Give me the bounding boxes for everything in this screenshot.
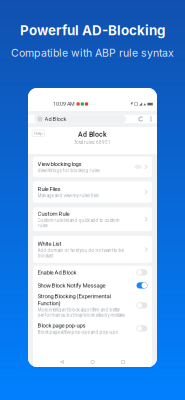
staticText: Strong Blocking (Experimental Function) xyxy=(37,293,110,307)
staticText: White List xyxy=(37,240,61,247)
staticText: Ad Block xyxy=(78,130,107,138)
staticText: Block page active pop-ups and pop-ups xyxy=(37,329,117,335)
staticText: Ad Block xyxy=(44,116,66,122)
staticText: Total rules: 68951 xyxy=(74,140,111,145)
staticText: More intelligent block algorithm and bet… xyxy=(37,307,124,318)
staticText: Rule Files xyxy=(37,186,60,192)
button[interactable]: Reload xyxy=(138,115,144,123)
button[interactable]: View blocking logs xyxy=(33,157,152,177)
button[interactable]: White List xyxy=(33,236,152,263)
staticText: Show Block Notify Message xyxy=(37,282,105,289)
staticText: Enable Ad Block xyxy=(37,269,76,276)
staticText: 10:09 AM xyxy=(53,101,75,107)
staticText: Add domain or host you do not want to be… xyxy=(37,248,123,258)
staticText: Powerful AD-Blocking xyxy=(20,22,165,38)
staticText: Compatible with ABP rule syntax xyxy=(11,47,174,59)
button[interactable]: Strong Blocking (Experimental Function) xyxy=(33,292,152,319)
button[interactable]: Back xyxy=(60,360,64,364)
staticText: ⋯ xyxy=(90,101,95,107)
button[interactable]: Rule Files xyxy=(33,181,152,203)
button[interactable]: More options xyxy=(149,115,153,123)
button[interactable]: Recents xyxy=(122,360,125,363)
staticText: View blocking logs xyxy=(37,160,81,167)
button[interactable]: Help xyxy=(32,130,44,136)
button[interactable]: Custom Rule xyxy=(33,207,152,231)
staticText: Help xyxy=(34,131,42,136)
staticText: Custom Rule xyxy=(37,210,69,217)
staticText: View hit logs for blocking rules xyxy=(37,168,99,173)
button[interactable]: Enable Ad Block xyxy=(33,266,152,279)
button[interactable]: Block page pop-ups xyxy=(33,319,152,338)
button[interactable]: Show Block Notify Message xyxy=(33,279,152,292)
staticText: Custom rule list and quick add to custom… xyxy=(37,218,119,228)
button[interactable]: Home xyxy=(91,360,94,364)
staticText: Manage and view my rules files xyxy=(37,193,98,198)
staticText: Block page pop-ups xyxy=(37,322,85,329)
